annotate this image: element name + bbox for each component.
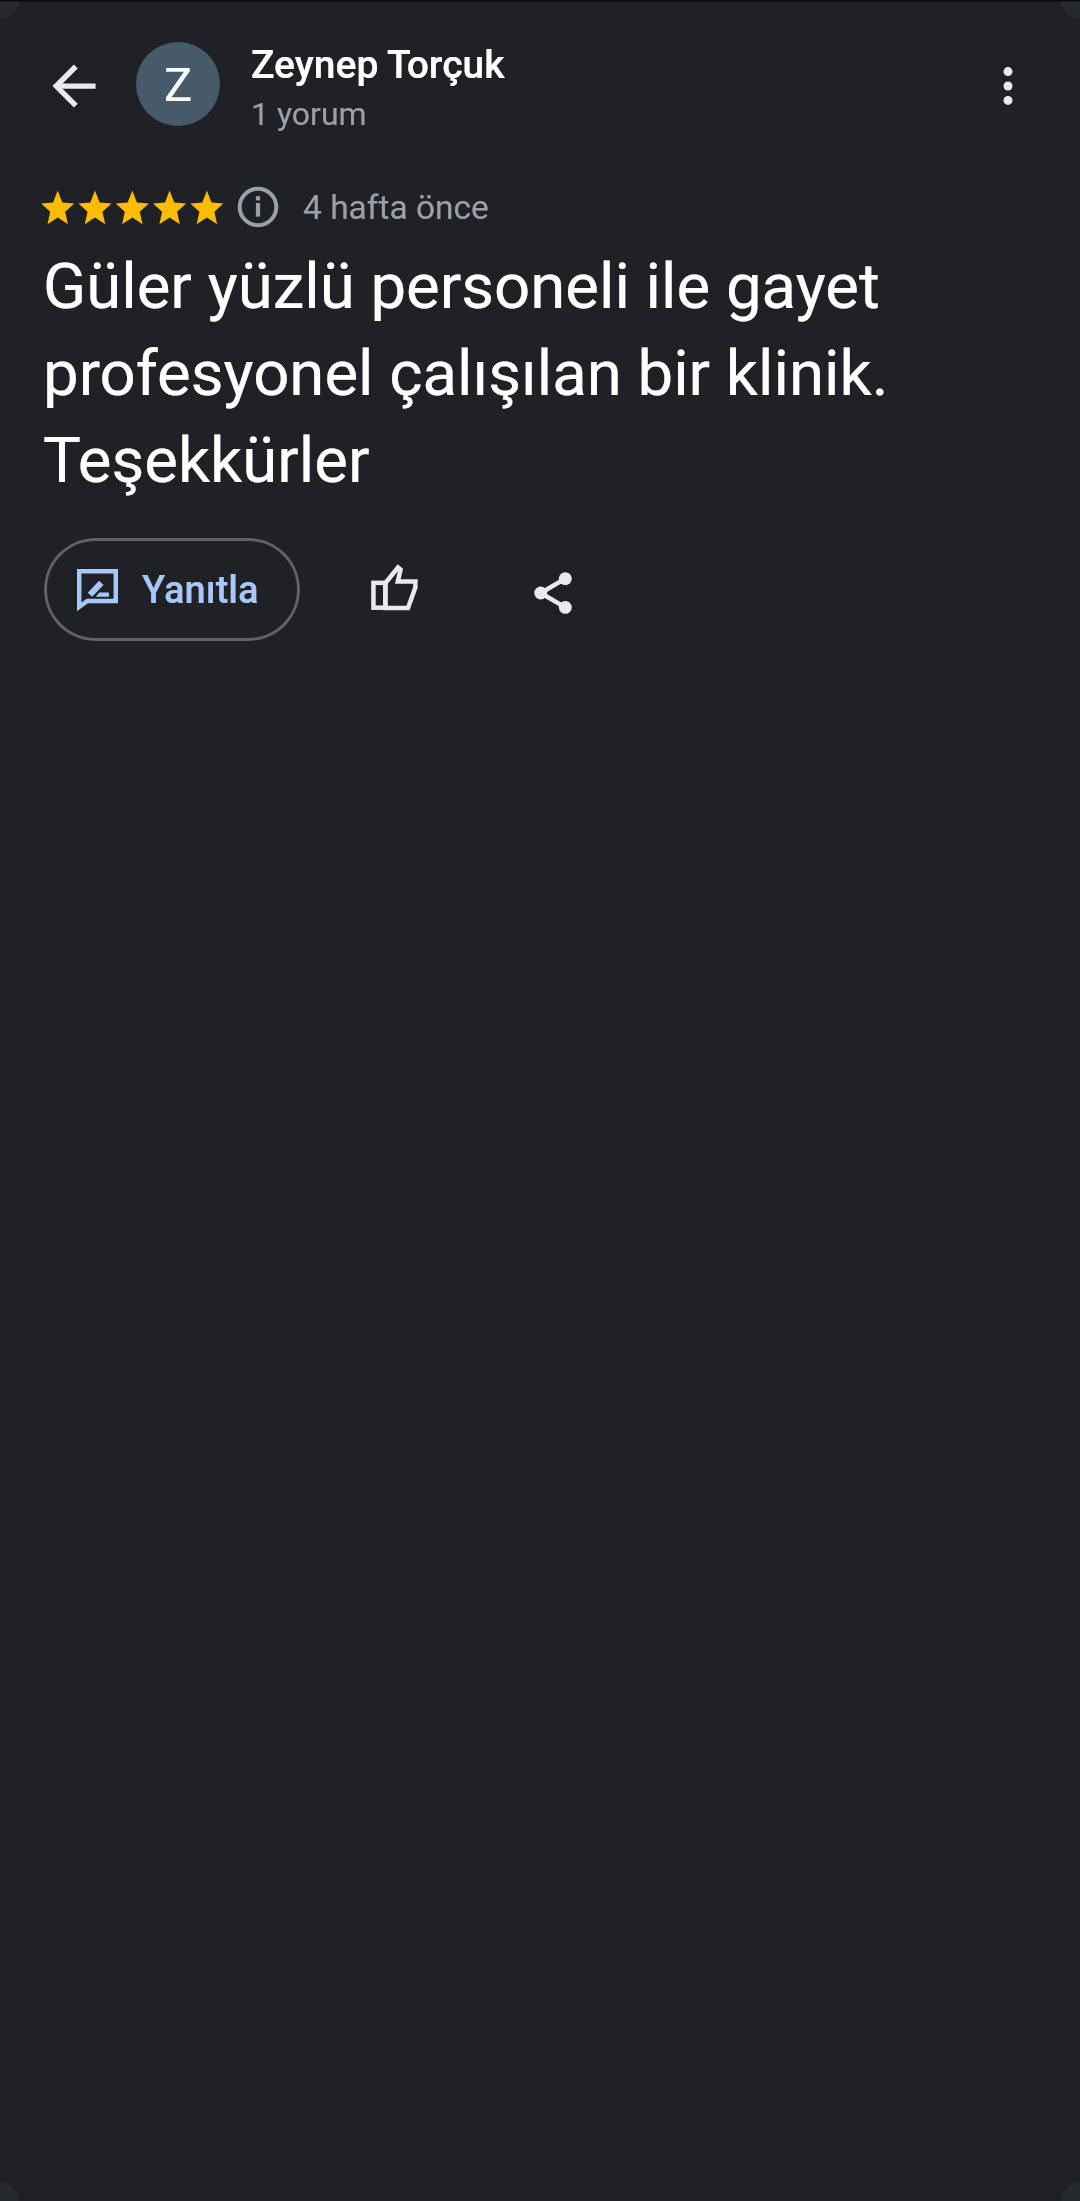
button[interactable]: More options — [960, 38, 1055, 133]
staticText: Yanıtla — [142, 567, 259, 613]
button[interactable]: Share — [504, 544, 602, 642]
button[interactable]: Like — [346, 540, 444, 638]
button[interactable]: Back — [26, 38, 121, 133]
staticText: Zeynep Torçuk — [251, 42, 505, 88]
button[interactable]: Yanıtla — [44, 538, 300, 641]
staticText: Güler yüzlü personeli ile gayet profesyo… — [43, 239, 953, 500]
staticText: Z — [164, 57, 193, 112]
staticText: 4 hafta önce — [303, 186, 489, 228]
staticText: 1 yorum — [251, 95, 367, 133]
